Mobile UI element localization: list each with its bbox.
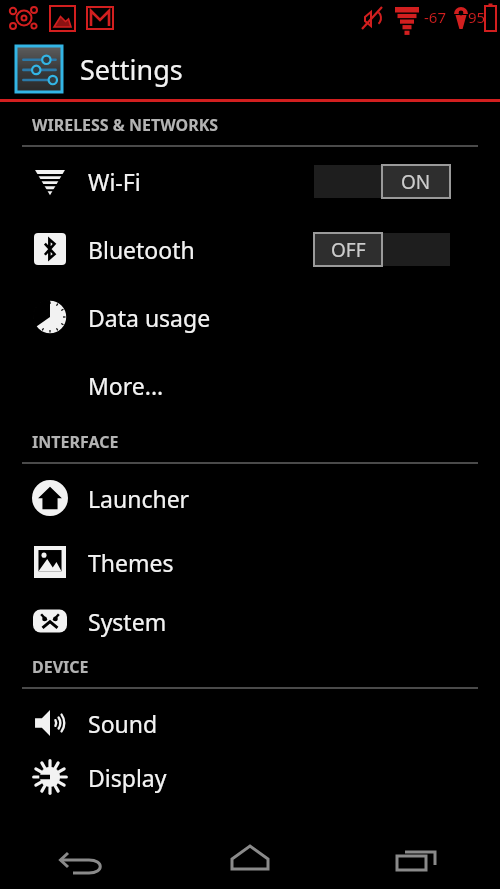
- button[interactable]: Display: [0, 757, 500, 797]
- staticText: System: [88, 606, 167, 637]
- staticText: WIRELESS & NETWORKS: [32, 114, 219, 136]
- button[interactable]: Launcher: [0, 464, 500, 532]
- staticText: Bluetooth: [88, 234, 195, 265]
- staticText: 95: [468, 7, 486, 27]
- staticText: ON: [401, 169, 431, 195]
- staticText: Data usage: [88, 302, 211, 333]
- staticText: Settings: [80, 51, 183, 88]
- button[interactable]: OFF: [314, 233, 450, 266]
- button[interactable]: Home: [166, 831, 333, 889]
- button[interactable]: System: [0, 592, 500, 650]
- staticText: Themes: [88, 547, 174, 578]
- staticText: More...: [88, 370, 164, 401]
- button[interactable]: Sound: [0, 689, 500, 757]
- staticText: INTERFACE: [32, 431, 119, 453]
- button[interactable]: Bluetooth: [0, 215, 500, 283]
- button[interactable]: Recents: [333, 831, 500, 889]
- staticText: Display: [88, 762, 167, 793]
- button[interactable]: Data usage: [0, 283, 500, 351]
- staticText: Sound: [88, 708, 158, 739]
- staticText: -67: [424, 7, 446, 27]
- staticText: Launcher: [88, 483, 190, 514]
- button[interactable]: Themes: [0, 532, 500, 592]
- button[interactable]: More...: [0, 351, 500, 419]
- button[interactable]: Wi-Fi: [0, 147, 500, 215]
- button[interactable]: Back: [0, 831, 166, 889]
- staticText: DEVICE: [32, 656, 89, 678]
- staticText: Wi-Fi: [88, 166, 141, 197]
- staticText: OFF: [331, 237, 366, 263]
- button[interactable]: ON: [314, 165, 450, 198]
